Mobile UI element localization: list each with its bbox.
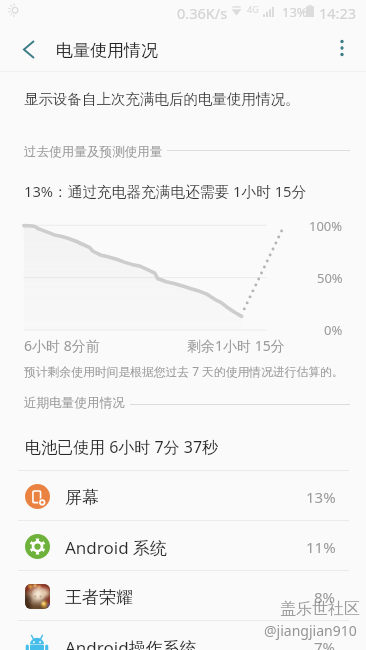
staticText: 剩余1小时 15分 — [187, 336, 285, 355]
button[interactable]: Android 系统 — [0, 521, 366, 570]
staticText: 0% — [324, 321, 343, 339]
staticText: 7% — [314, 637, 336, 650]
staticText: 50% — [317, 269, 343, 287]
staticText: Android操作系统 — [65, 636, 197, 650]
button[interactable]: More options — [318, 24, 366, 72]
staticText: 4G — [247, 3, 259, 15]
staticText: 盖乐世社区 — [280, 599, 360, 619]
staticText: 屏幕 — [65, 487, 99, 508]
staticText: 电池已使用 6小时 7分 37秒 — [25, 436, 219, 458]
staticText: 王者荣耀 — [65, 587, 133, 608]
staticText: 预计剩余使用时间是根据您过去 7 天的使用情况进行估算的。 — [24, 363, 344, 379]
staticText: 8% — [314, 587, 336, 607]
button[interactable]: 王者荣耀 — [0, 571, 366, 620]
staticText: 14:23 — [319, 3, 357, 23]
button[interactable]: Back — [4, 25, 52, 73]
staticText: 13% — [306, 487, 336, 507]
staticText: 13% — [282, 3, 308, 21]
staticText: Android 系统 — [65, 536, 168, 559]
staticText: 近期电量使用情况 — [24, 395, 125, 411]
staticText: 13%：通过充电器充满电还需要 1小时 15分 — [24, 181, 307, 201]
button[interactable]: Android操作系统 — [0, 621, 366, 650]
staticText: 0.36K/s — [177, 3, 228, 23]
button[interactable]: 屏幕 — [0, 471, 366, 520]
staticText: 100% — [309, 217, 343, 235]
staticText: 11% — [306, 537, 336, 557]
staticText: 6小时 8分前 — [24, 336, 100, 355]
staticText: @jiangjian910 — [264, 621, 357, 640]
staticText: 过去使用量及预测使用量 — [24, 144, 163, 160]
staticText: 电量使用情况 — [56, 40, 158, 61]
staticText: 显示设备自上次充满电后的电量使用情况。 — [24, 90, 300, 108]
